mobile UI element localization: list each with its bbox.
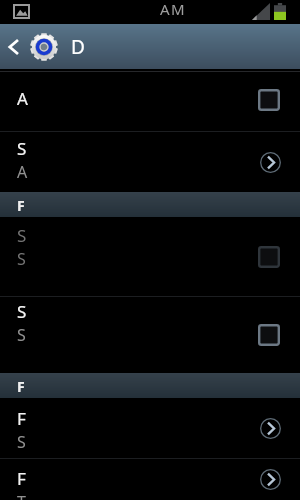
button[interactable]: S bbox=[0, 217, 300, 296]
button[interactable]: F bbox=[0, 459, 300, 500]
button[interactable]: Open bbox=[260, 469, 281, 490]
button[interactable]: A bbox=[0, 69, 300, 131]
staticText: F bbox=[17, 196, 25, 215]
button[interactable]: Open bbox=[260, 418, 281, 439]
button[interactable]: S bbox=[0, 132, 300, 192]
staticText: F bbox=[17, 377, 25, 396]
staticText: S bbox=[17, 248, 26, 270]
staticText: S bbox=[17, 324, 26, 346]
staticText: S bbox=[17, 224, 27, 247]
staticText: S bbox=[17, 137, 27, 160]
staticText: A bbox=[17, 161, 28, 183]
button[interactable]: F bbox=[0, 398, 300, 458]
staticText: M bbox=[171, 0, 185, 19]
staticText: A bbox=[17, 87, 28, 110]
staticText: T bbox=[17, 491, 26, 500]
staticText: F bbox=[17, 467, 26, 490]
staticText: S bbox=[17, 431, 26, 453]
staticText: S bbox=[17, 300, 27, 323]
staticText: F bbox=[17, 407, 26, 430]
button[interactable]: Navigate up bbox=[0, 24, 300, 69]
staticText: D bbox=[71, 34, 85, 60]
button[interactable]: Open bbox=[260, 152, 281, 173]
staticText: A bbox=[160, 0, 170, 19]
button[interactable]: S bbox=[0, 297, 300, 373]
button[interactable]: Toggle bbox=[258, 89, 280, 111]
button[interactable]: Toggle bbox=[258, 246, 280, 268]
button[interactable]: Toggle bbox=[258, 324, 280, 346]
